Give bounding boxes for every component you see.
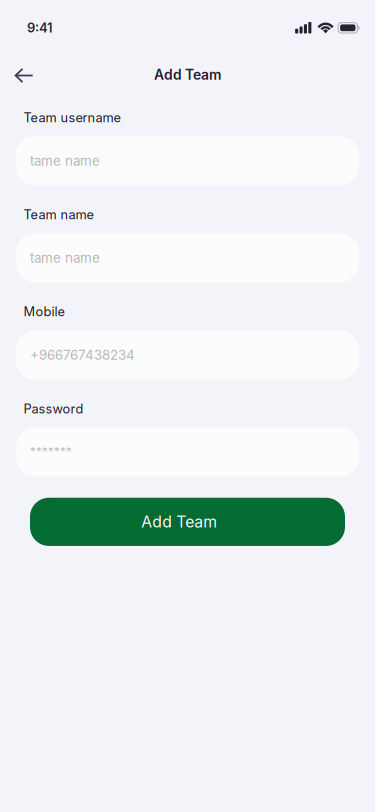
staticText: tame name <box>30 250 100 266</box>
button[interactable]: tame name <box>16 233 359 282</box>
staticText: ******* <box>30 445 72 459</box>
button[interactable]: ******* <box>16 427 359 476</box>
staticText: Team username <box>24 110 121 125</box>
staticText: Team name <box>24 207 94 222</box>
staticText: tame name <box>30 153 100 169</box>
button[interactable]: tame name <box>16 136 359 185</box>
button[interactable]: +966767438234 <box>16 330 359 379</box>
staticText: Add Team <box>141 512 217 531</box>
staticText: Add Team <box>154 66 221 83</box>
staticText: Mobile <box>24 304 65 319</box>
button[interactable]: Add Team <box>30 498 345 546</box>
staticText: Password <box>24 401 84 417</box>
button[interactable]: Back <box>0 58 48 91</box>
staticText: 9:41 <box>27 20 53 36</box>
staticText: +966767438234 <box>30 347 135 363</box>
